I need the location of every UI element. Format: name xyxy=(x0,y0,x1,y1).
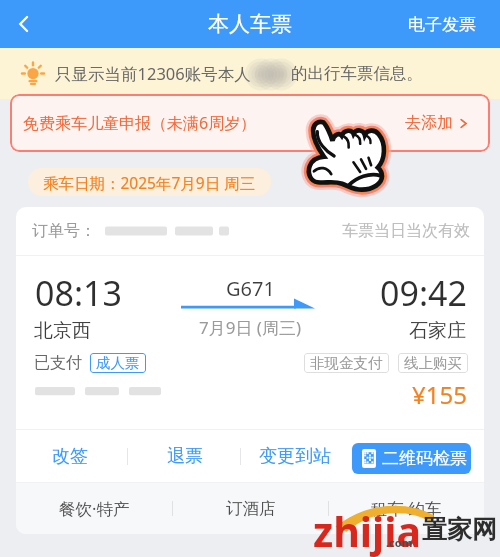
staticText: 石家庄 xyxy=(409,319,466,343)
staticText: 置家网 xyxy=(422,514,497,545)
staticText: 乘车日期：2025年7月9日 周三 xyxy=(43,172,256,193)
staticText: zhijia xyxy=(313,503,422,557)
staticText: 7月9日 (周三) xyxy=(199,316,302,339)
staticText: 09:42 xyxy=(380,270,467,316)
staticText: 租车·约车 xyxy=(371,497,442,520)
staticText: 车票当日当次有效 xyxy=(342,221,470,241)
button[interactable]: 租车·约车 xyxy=(329,483,484,534)
staticText: 线上购买 xyxy=(404,354,462,372)
staticText: 只显示当前12306账号本人 xyxy=(55,62,251,85)
staticText: 二维码检票 xyxy=(382,448,467,469)
button[interactable]: 免费乘车儿童申报（未满6周岁） xyxy=(10,94,490,152)
button[interactable]: 餐饮·特产 xyxy=(16,483,172,534)
button[interactable]: 二维码检票 xyxy=(352,443,471,474)
staticText: 餐饮·特产 xyxy=(59,497,130,520)
staticText: 改签 xyxy=(52,445,88,468)
staticText: 本人车票 xyxy=(208,11,292,37)
staticText: 退票 xyxy=(167,445,203,468)
staticText: 成人票 xyxy=(96,354,140,372)
button[interactable]: 电子发票 xyxy=(375,14,500,35)
staticText: 北京西 xyxy=(34,319,91,343)
staticText: 非现金支付 xyxy=(310,354,383,372)
button[interactable]: 改签 xyxy=(44,430,96,482)
staticText: 变更到站 xyxy=(259,445,331,468)
button[interactable]: 退票 xyxy=(159,430,211,482)
button[interactable]: 变更到站 xyxy=(251,430,339,482)
button[interactable]: 订酒店 xyxy=(173,483,328,534)
staticText: 已支付 xyxy=(34,353,82,373)
staticText: 电子发票 xyxy=(408,14,476,35)
staticText: 的出行车票信息。 xyxy=(291,63,423,84)
staticText: 08:13 xyxy=(35,270,122,316)
staticText: .com xyxy=(386,535,413,550)
staticText: 订单号： xyxy=(32,221,96,241)
staticText: 去添加 xyxy=(405,113,453,133)
staticText: ¥155 xyxy=(412,378,467,411)
staticText: G671 xyxy=(226,275,275,302)
button[interactable]: Back xyxy=(0,0,48,48)
staticText: 免费乘车儿童申报（未满6周岁） xyxy=(23,112,257,134)
staticText: 订酒店 xyxy=(226,498,276,519)
